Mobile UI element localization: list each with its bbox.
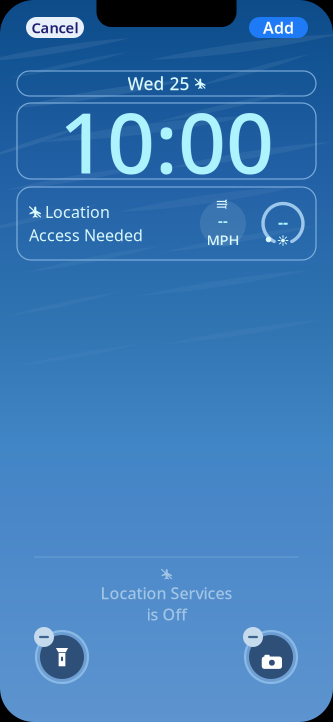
button[interactable]: Remove Flashlight <box>36 631 88 683</box>
button[interactable]: Wed 25 <box>0 71 333 96</box>
staticText: MPH <box>206 230 239 249</box>
staticText: is Off <box>146 604 186 625</box>
staticText: Add <box>263 17 294 38</box>
staticText: Location Services <box>100 582 232 604</box>
button[interactable]: Location <box>0 187 333 260</box>
staticText: Location <box>45 201 110 222</box>
button[interactable]: Cancel <box>26 17 84 38</box>
staticText: Wed 25 <box>127 72 189 95</box>
staticText: Cancel <box>31 18 78 37</box>
button[interactable]: Remove Camera <box>245 631 297 683</box>
staticText: Access Needed <box>29 224 143 246</box>
button[interactable]: 10:00 <box>0 103 333 179</box>
staticText: 10:00 <box>59 85 274 197</box>
staticText: -- <box>278 211 288 232</box>
staticText: -- <box>218 210 228 230</box>
button[interactable]: Add <box>249 17 308 38</box>
